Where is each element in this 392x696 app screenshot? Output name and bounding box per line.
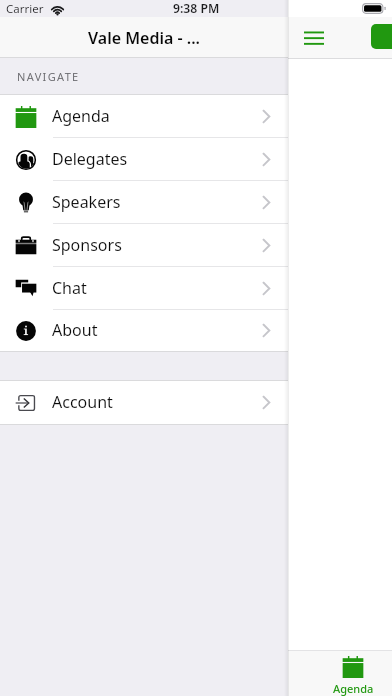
button[interactable]: Agenda <box>288 651 392 696</box>
button[interactable]: Account <box>0 381 288 424</box>
staticText: Speakers <box>52 191 121 213</box>
button[interactable]: About <box>0 310 288 351</box>
staticText: About <box>52 319 98 341</box>
button[interactable]: Delegates <box>0 138 288 181</box>
staticText: Agenda <box>333 681 374 696</box>
button[interactable]: Open navigation menu <box>304 28 324 48</box>
button[interactable]: Sponsors <box>0 224 288 267</box>
staticText: Carrier <box>6 1 44 17</box>
staticText: Chat <box>52 277 87 299</box>
staticText: Agenda <box>52 105 110 127</box>
button[interactable]: Speakers <box>0 181 288 224</box>
staticText: Vale Media - ... <box>88 27 201 49</box>
staticText: 9:38 PM <box>173 0 220 17</box>
staticText: Sponsors <box>52 234 122 256</box>
button[interactable]: Chat <box>0 267 288 310</box>
staticText: Account <box>52 391 113 413</box>
staticText: NAVIGATE <box>17 69 80 84</box>
staticText: Delegates <box>52 148 128 170</box>
button[interactable]: Agenda <box>0 95 288 138</box>
button[interactable]: Action <box>371 24 392 49</box>
